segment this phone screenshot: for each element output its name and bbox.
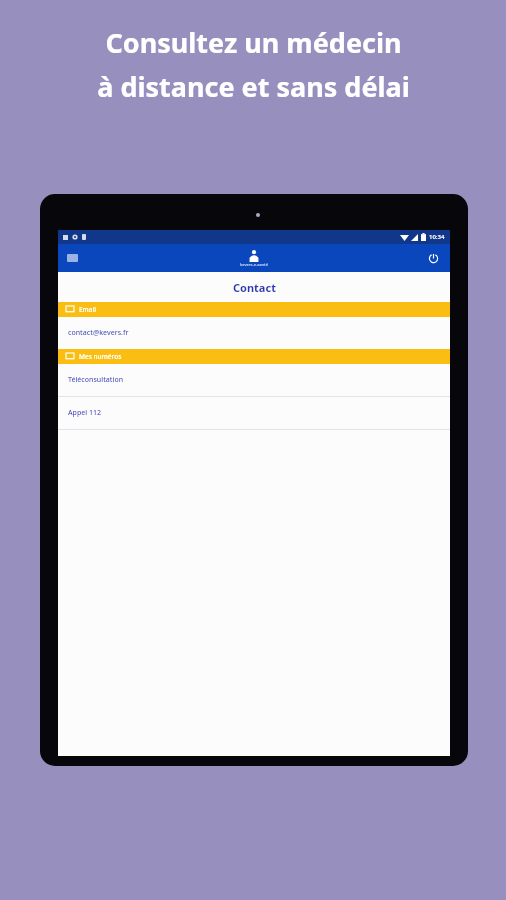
staticText: Appel 112 — [68, 408, 102, 418]
button[interactable]: Menu — [64, 250, 80, 266]
button[interactable]: Mes numéros — [58, 349, 450, 364]
button[interactable]: Appel 112 — [58, 397, 450, 429]
staticText: Mes numéros — [79, 352, 122, 361]
staticText: à distance et sans délai — [97, 68, 410, 105]
button[interactable]: Email — [58, 302, 450, 317]
staticText: Contact — [233, 280, 276, 295]
staticText: Téléconsultation — [68, 375, 124, 385]
button[interactable]: Téléconsultation — [58, 364, 450, 396]
staticText: kevers-e-santé — [240, 262, 268, 267]
staticText: Email — [79, 305, 97, 314]
staticText: 10:34 — [429, 233, 445, 241]
staticText: Consultez un médecin — [105, 24, 402, 61]
button[interactable]: Déconnexion — [424, 249, 442, 267]
staticText: contact@kevers.fr — [68, 328, 129, 338]
button[interactable]: contact@kevers.fr — [58, 317, 450, 349]
